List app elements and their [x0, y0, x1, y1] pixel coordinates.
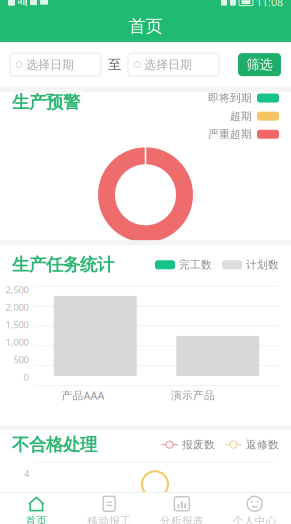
staticText: 超期 — [230, 110, 252, 123]
staticText: 个人中心 — [233, 514, 277, 524]
staticText: 500 — [13, 353, 28, 366]
button[interactable]: 筛选 — [238, 53, 281, 76]
staticText: 移动报工 — [87, 514, 131, 524]
staticText: 生产任务统计 — [12, 254, 114, 275]
staticText: 计划数 — [246, 258, 279, 271]
staticText: 2,500 — [5, 283, 28, 296]
staticText: 产品AAA — [61, 388, 104, 402]
staticText: 分析报表 — [160, 514, 204, 524]
staticText: 首页 — [128, 15, 162, 37]
staticText: 生产预警 — [12, 91, 80, 113]
button[interactable]: 移动报工 — [73, 493, 146, 524]
staticText: 演示产品 — [171, 389, 215, 402]
staticText: 1,000 — [5, 336, 28, 348]
staticText: 报废数 — [182, 438, 215, 451]
staticText: 1,500 — [5, 318, 28, 331]
staticText: 至 — [108, 56, 121, 73]
button[interactable]: 分析报表 — [145, 493, 218, 524]
button[interactable]: 首页 — [0, 493, 73, 524]
staticText: 严重超期 — [208, 128, 252, 141]
staticText: 完工数 — [179, 258, 212, 271]
staticText: 选择日期 — [144, 57, 192, 72]
button[interactable]: 个人中心 — [218, 493, 291, 524]
staticText: 11:08 — [256, 0, 283, 9]
staticText: 即将到期 — [208, 91, 252, 105]
staticText: 选择日期 — [26, 57, 74, 72]
staticText: 返修数 — [246, 438, 279, 451]
staticText: 首页 — [25, 514, 47, 524]
button[interactable]: 选择日期 — [10, 53, 101, 76]
staticText: 不合格处理 — [12, 434, 97, 455]
button[interactable]: 选择日期 — [128, 53, 219, 76]
staticText: 0 — [23, 371, 28, 383]
staticText: 2,000 — [5, 301, 28, 313]
staticText: 筛选 — [246, 56, 272, 73]
staticText: 4 — [24, 467, 29, 480]
